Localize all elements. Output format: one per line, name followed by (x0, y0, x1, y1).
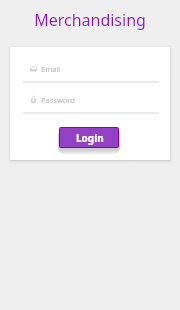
staticText: Email (41, 64, 61, 74)
staticText: Login (76, 131, 104, 145)
staticText: Password (41, 95, 75, 105)
button[interactable]: Login (60, 128, 118, 147)
staticText: Merchandising (0, 9, 180, 31)
